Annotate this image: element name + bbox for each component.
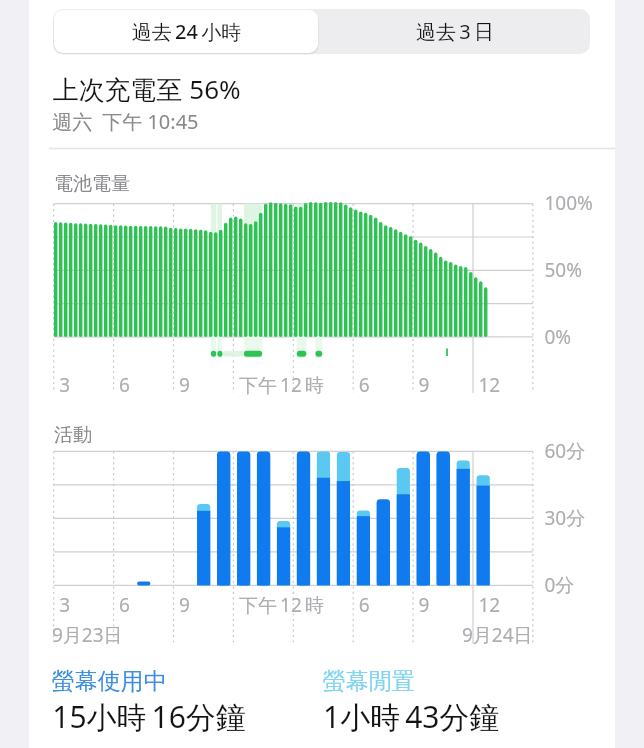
button[interactable] [318, 10, 590, 53]
button[interactable] [54, 10, 318, 53]
